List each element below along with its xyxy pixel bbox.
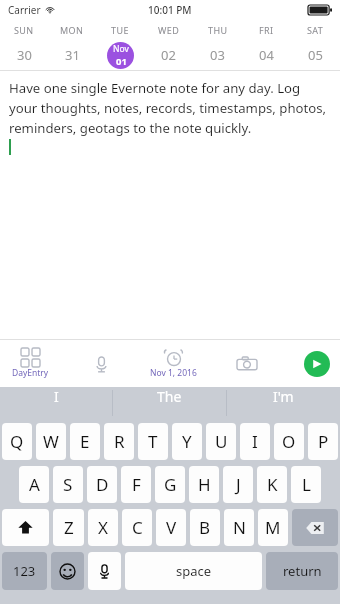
button[interactable]: Voice record — [85, 348, 117, 380]
staticText: 05 — [308, 46, 323, 64]
button[interactable]: 31 — [48, 46, 96, 64]
staticText: J — [236, 473, 241, 496]
button[interactable]: Nov — [96, 42, 144, 69]
button[interactable]: E — [70, 423, 100, 460]
button[interactable]: I — [0, 387, 112, 406]
staticText: D — [96, 473, 109, 496]
staticText: WED — [158, 24, 180, 36]
button[interactable]: J — [223, 466, 253, 503]
button[interactable]: Camera — [231, 348, 263, 380]
staticText: return — [283, 562, 322, 580]
button[interactable]: D — [87, 466, 117, 503]
staticText: L — [302, 473, 311, 496]
button[interactable]: W — [36, 423, 66, 460]
staticText: SAT — [307, 24, 324, 36]
staticText: Y — [182, 430, 192, 453]
staticText: Nov 1, 2016 — [150, 367, 197, 379]
button[interactable]: Shift — [2, 509, 49, 546]
staticText: N — [233, 516, 246, 539]
staticText: O — [282, 430, 296, 453]
staticText: X — [98, 516, 108, 539]
button[interactable]: I'm — [227, 387, 340, 406]
staticText: 30 — [17, 46, 32, 64]
button[interactable]: DayEntry — [10, 346, 51, 381]
button[interactable]: 123 — [2, 552, 47, 590]
staticText: MON — [60, 24, 84, 36]
button[interactable]: 30 — [0, 46, 48, 64]
button[interactable]: P — [308, 423, 338, 460]
button[interactable]: R — [104, 423, 134, 460]
button[interactable]: space — [125, 552, 262, 590]
button[interactable]: O — [274, 423, 304, 460]
staticText: DayEntry — [12, 367, 49, 379]
staticText: I'm — [273, 387, 294, 406]
staticText: A — [29, 473, 40, 496]
staticText: 04 — [259, 46, 274, 64]
staticText: C — [132, 516, 143, 539]
button[interactable]: V — [156, 509, 186, 546]
button[interactable]: U — [206, 423, 236, 460]
staticText: space — [176, 562, 212, 580]
button[interactable]: Q — [2, 423, 32, 460]
staticText: H — [198, 473, 211, 496]
staticText: 01 — [116, 55, 127, 68]
staticText: P — [318, 430, 329, 453]
button[interactable]: M — [258, 509, 288, 546]
staticText: 02 — [161, 46, 176, 64]
button[interactable]: 03 — [193, 46, 242, 64]
button[interactable]: Z — [53, 509, 84, 546]
staticText: E — [80, 430, 90, 453]
staticText: G — [164, 473, 177, 496]
staticText: The — [157, 387, 182, 406]
staticText: T — [148, 430, 158, 453]
staticText: F — [132, 473, 141, 496]
staticText: 31 — [65, 46, 80, 64]
button[interactable]: The — [113, 387, 226, 406]
button[interactable]: B — [190, 509, 220, 546]
button[interactable]: Send — [304, 351, 330, 377]
button[interactable]: Dictate — [88, 552, 121, 590]
button[interactable]: return — [266, 552, 338, 590]
button[interactable]: Backspace — [292, 509, 338, 546]
staticText: Z — [64, 516, 74, 539]
staticText: U — [215, 430, 228, 453]
staticText: THU — [208, 24, 228, 36]
button[interactable]: H — [189, 466, 219, 503]
button[interactable]: F — [121, 466, 151, 503]
button[interactable]: S — [53, 466, 83, 503]
staticText: TUE — [111, 24, 129, 36]
button[interactable]: K — [257, 466, 287, 503]
staticText: M — [265, 516, 281, 539]
staticText: 03 — [210, 46, 225, 64]
button[interactable]: 05 — [291, 46, 340, 64]
staticText: Have one single Evernote note for any da… — [9, 79, 331, 137]
staticText: V — [166, 516, 177, 539]
staticText: 123 — [13, 562, 36, 580]
button[interactable]: I — [240, 423, 270, 460]
button[interactable]: T — [138, 423, 168, 460]
button[interactable]: L — [291, 466, 321, 503]
staticText: B — [199, 516, 211, 539]
button[interactable]: A — [19, 466, 49, 503]
button[interactable]: C — [122, 509, 152, 546]
button[interactable]: Emoji — [51, 552, 84, 590]
staticText: S — [63, 473, 73, 496]
button[interactable]: 02 — [144, 46, 193, 64]
button[interactable]: X — [88, 509, 118, 546]
staticText: R — [114, 430, 125, 453]
staticText: 10:01 PM — [148, 3, 192, 17]
staticText: SUN — [14, 24, 34, 36]
staticText: K — [267, 473, 278, 496]
staticText: Q — [10, 430, 24, 453]
button[interactable]: Nov 1, 2016 — [148, 347, 199, 381]
staticText: I — [54, 387, 59, 406]
button[interactable]: N — [224, 509, 254, 546]
staticText: I — [252, 430, 258, 453]
button[interactable]: Y — [172, 423, 202, 460]
button[interactable]: G — [155, 466, 185, 503]
staticText: W — [43, 430, 59, 453]
staticText: Nov — [113, 43, 129, 55]
staticText: Carrier — [8, 3, 41, 17]
staticText: FRI — [259, 24, 274, 36]
button[interactable]: 04 — [242, 46, 291, 64]
